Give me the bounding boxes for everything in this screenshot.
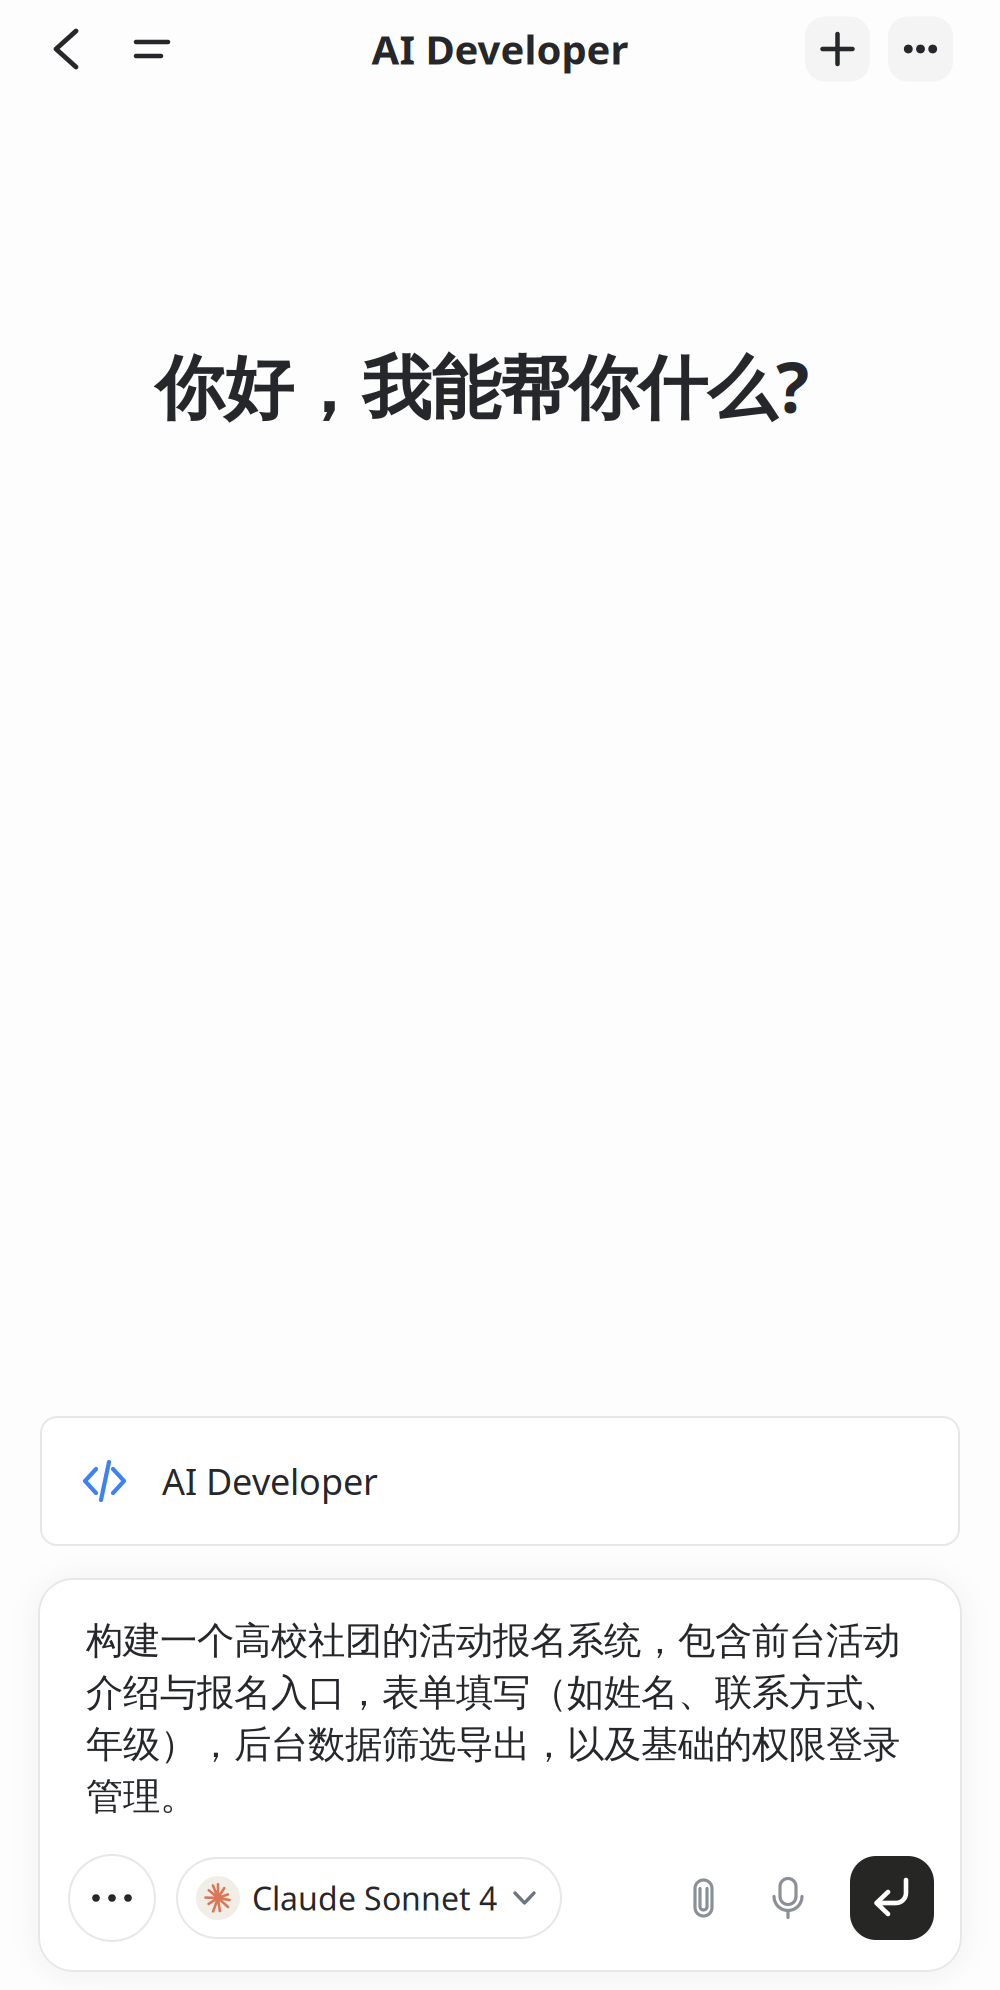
button[interactable]: AI Developer <box>40 1416 960 1546</box>
button[interactable]: More options <box>888 16 953 81</box>
button[interactable]: Claude Sonnet 4 <box>176 1857 562 1939</box>
button[interactable]: Attach file <box>657 1860 751 1936</box>
staticText: AI Developer <box>371 22 628 75</box>
button[interactable]: Voice input <box>751 1860 827 1936</box>
staticText: 构建一个高校社团的活动报名系统，包含前台活动介绍与报名入口，表单填写（如姓名、联… <box>86 1618 900 1819</box>
staticText: AI Developer <box>162 1457 378 1505</box>
button[interactable]: Send <box>850 1856 934 1940</box>
button[interactable]: More actions <box>68 1854 156 1942</box>
staticText: Claude Sonnet 4 <box>252 1877 497 1919</box>
button[interactable]: Conversations <box>94 7 210 91</box>
staticText: 你好，我能帮你什么? <box>155 340 809 432</box>
button[interactable]: New chat <box>805 16 870 81</box>
button[interactable]: Back <box>38 7 94 91</box>
